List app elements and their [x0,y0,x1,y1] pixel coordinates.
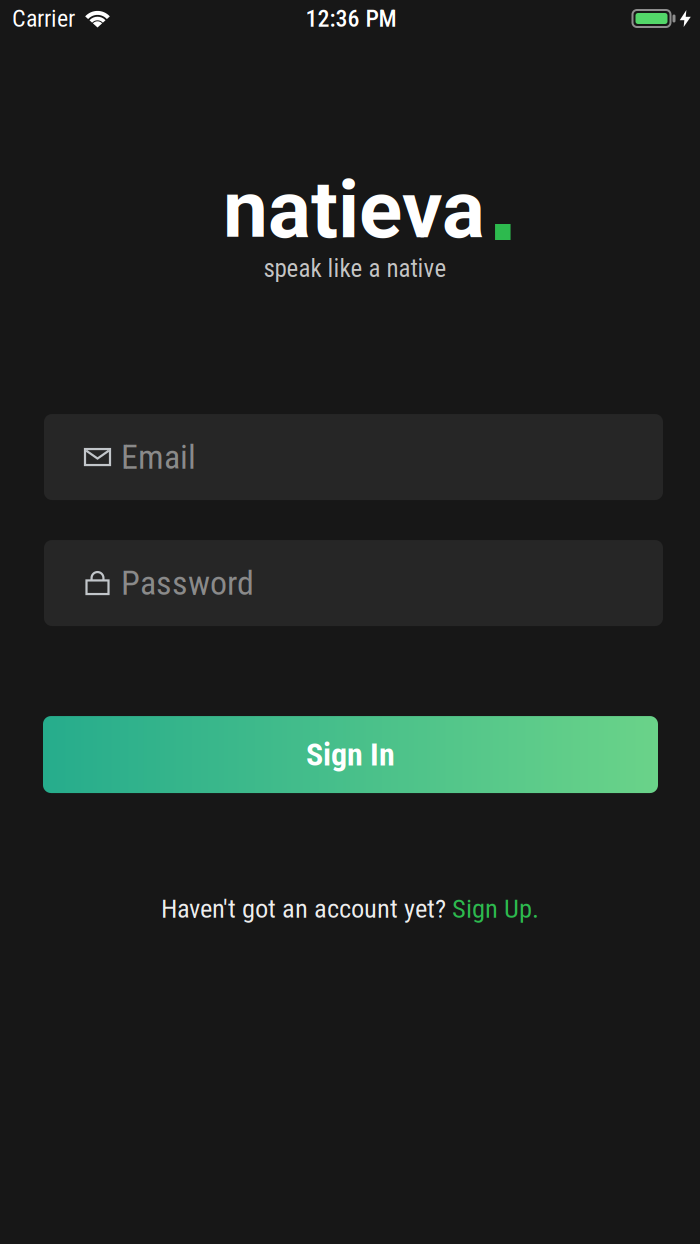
button[interactable]: Password [0,540,700,626]
staticText: 12:36 PM [305,4,396,32]
button[interactable]: Sign Up. [452,893,539,924]
staticText: Password [121,563,254,603]
staticText: Carrier [12,4,75,32]
staticText: Sign In [306,736,395,773]
staticText: natieva [223,163,485,257]
staticText: Sign Up. [452,893,539,924]
button[interactable]: Sign In [0,716,700,793]
staticText: Haven't got an account yet? [161,893,452,924]
button[interactable]: Email [0,414,700,500]
staticText: speak like a native [263,254,446,283]
staticText: Email [121,437,196,477]
